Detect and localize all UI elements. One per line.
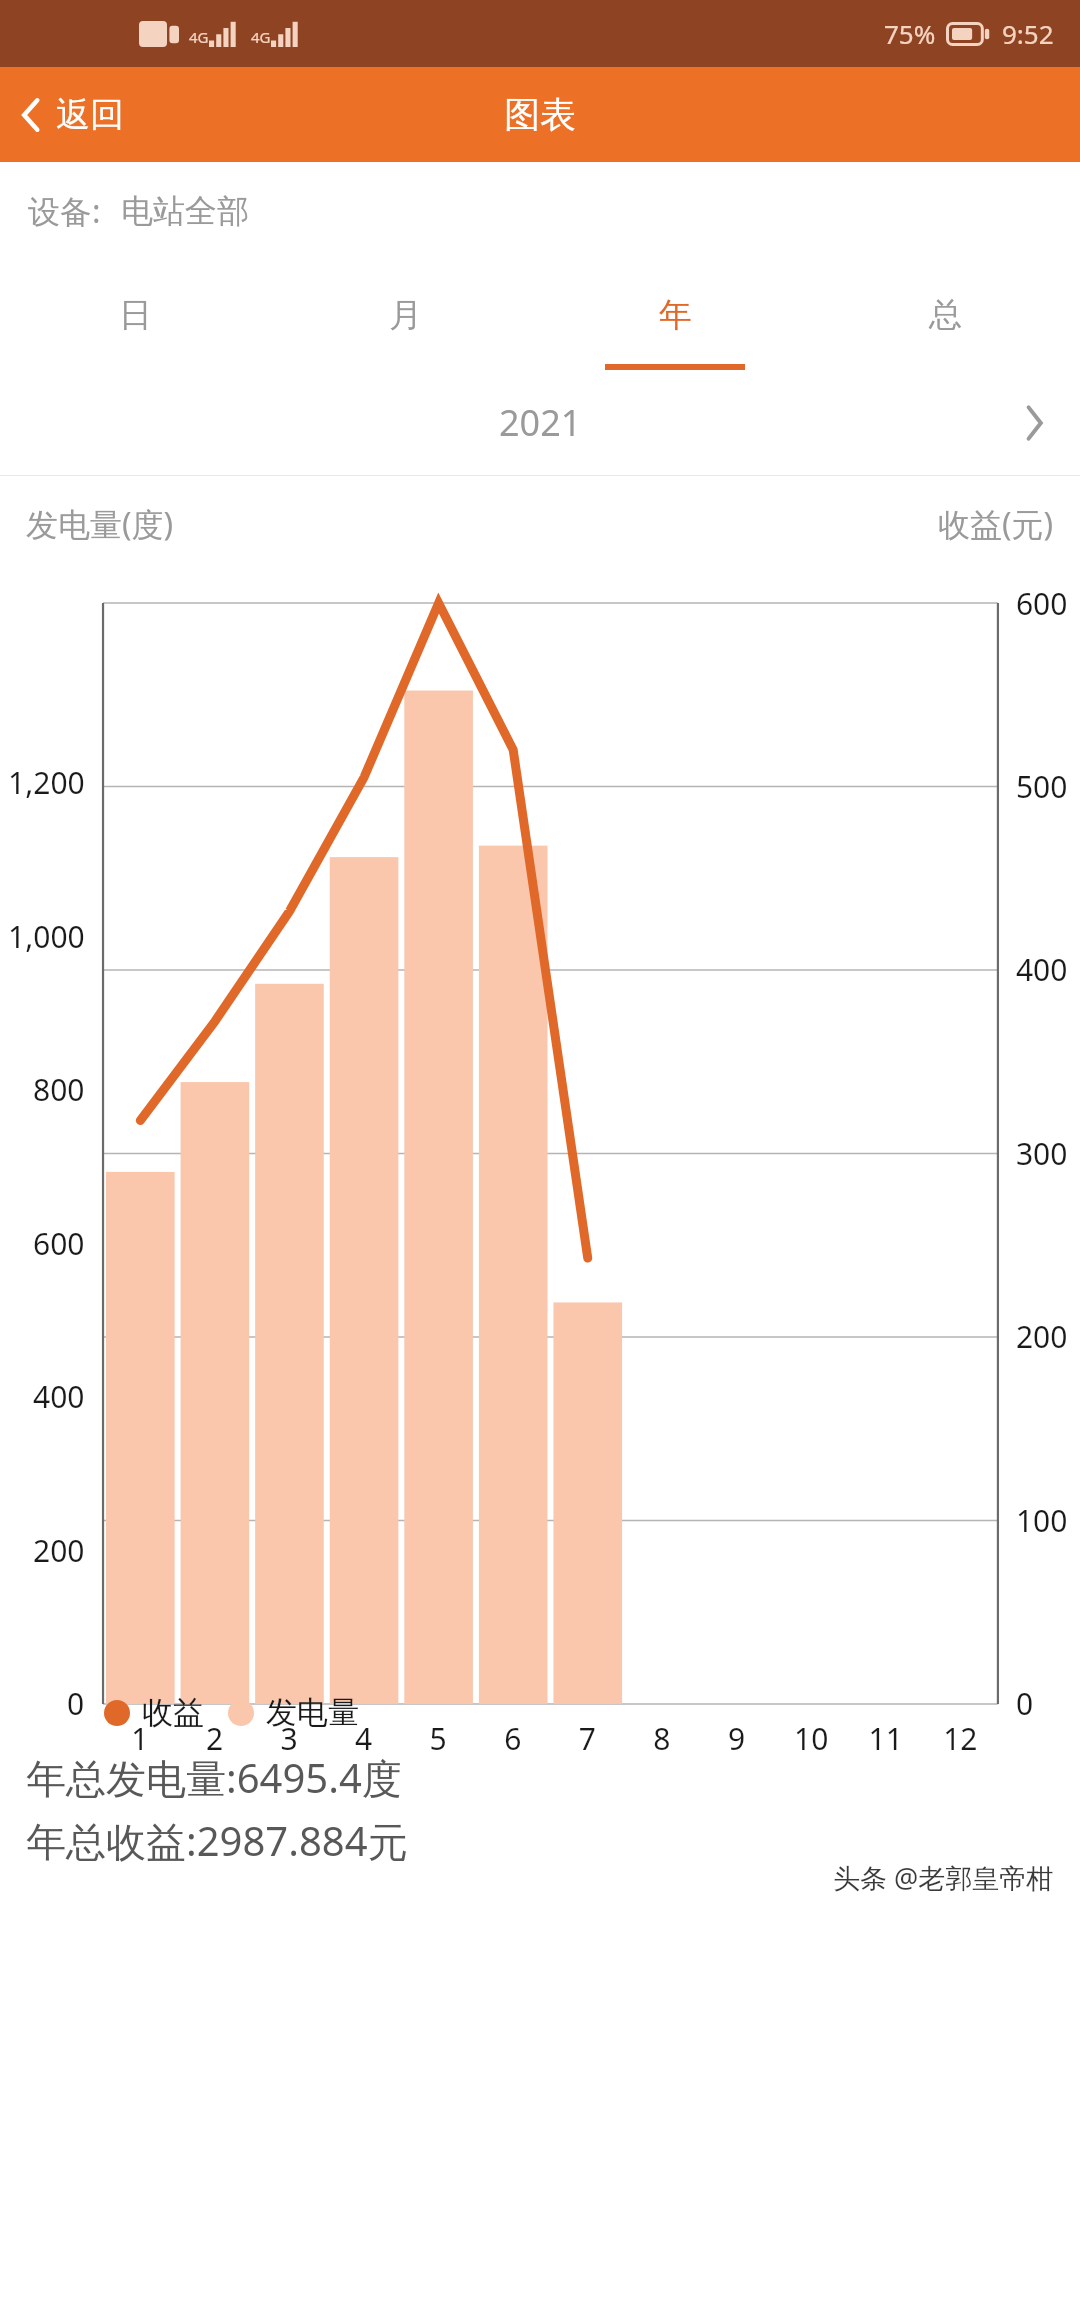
staticText: 75%	[884, 16, 936, 51]
button[interactable]: 年	[540, 260, 810, 370]
staticText: 头条 @老郭皇帝柑	[833, 1859, 1054, 1896]
staticText: 发电量	[266, 1693, 359, 1732]
staticText: 电站全部	[121, 191, 249, 231]
staticText: 日	[119, 294, 152, 336]
staticText: 4G	[251, 27, 271, 47]
staticText: 月	[389, 294, 422, 336]
button[interactable]: 月	[270, 260, 540, 370]
staticText: 9:52	[1002, 16, 1054, 51]
staticText: 4G	[189, 27, 209, 47]
staticText: 年总收益:2987.884元	[26, 1813, 408, 1868]
staticText: 收益(元)	[938, 502, 1054, 546]
staticText: 返回	[56, 93, 124, 136]
button[interactable]: 日	[0, 260, 270, 370]
button[interactable]: Next year	[988, 370, 1080, 475]
button[interactable]: 返回	[0, 67, 148, 162]
staticText: 图表	[504, 92, 576, 137]
staticText: 发电量(度)	[26, 502, 174, 546]
staticText: 总	[929, 294, 962, 336]
staticText: 年	[659, 294, 692, 336]
staticText: 收益	[142, 1693, 204, 1732]
staticText: 2021	[499, 398, 582, 447]
button[interactable]: 总	[810, 260, 1080, 370]
staticText: 年总发电量:6495.4度	[26, 1750, 402, 1805]
staticText: 设备:	[28, 189, 101, 233]
